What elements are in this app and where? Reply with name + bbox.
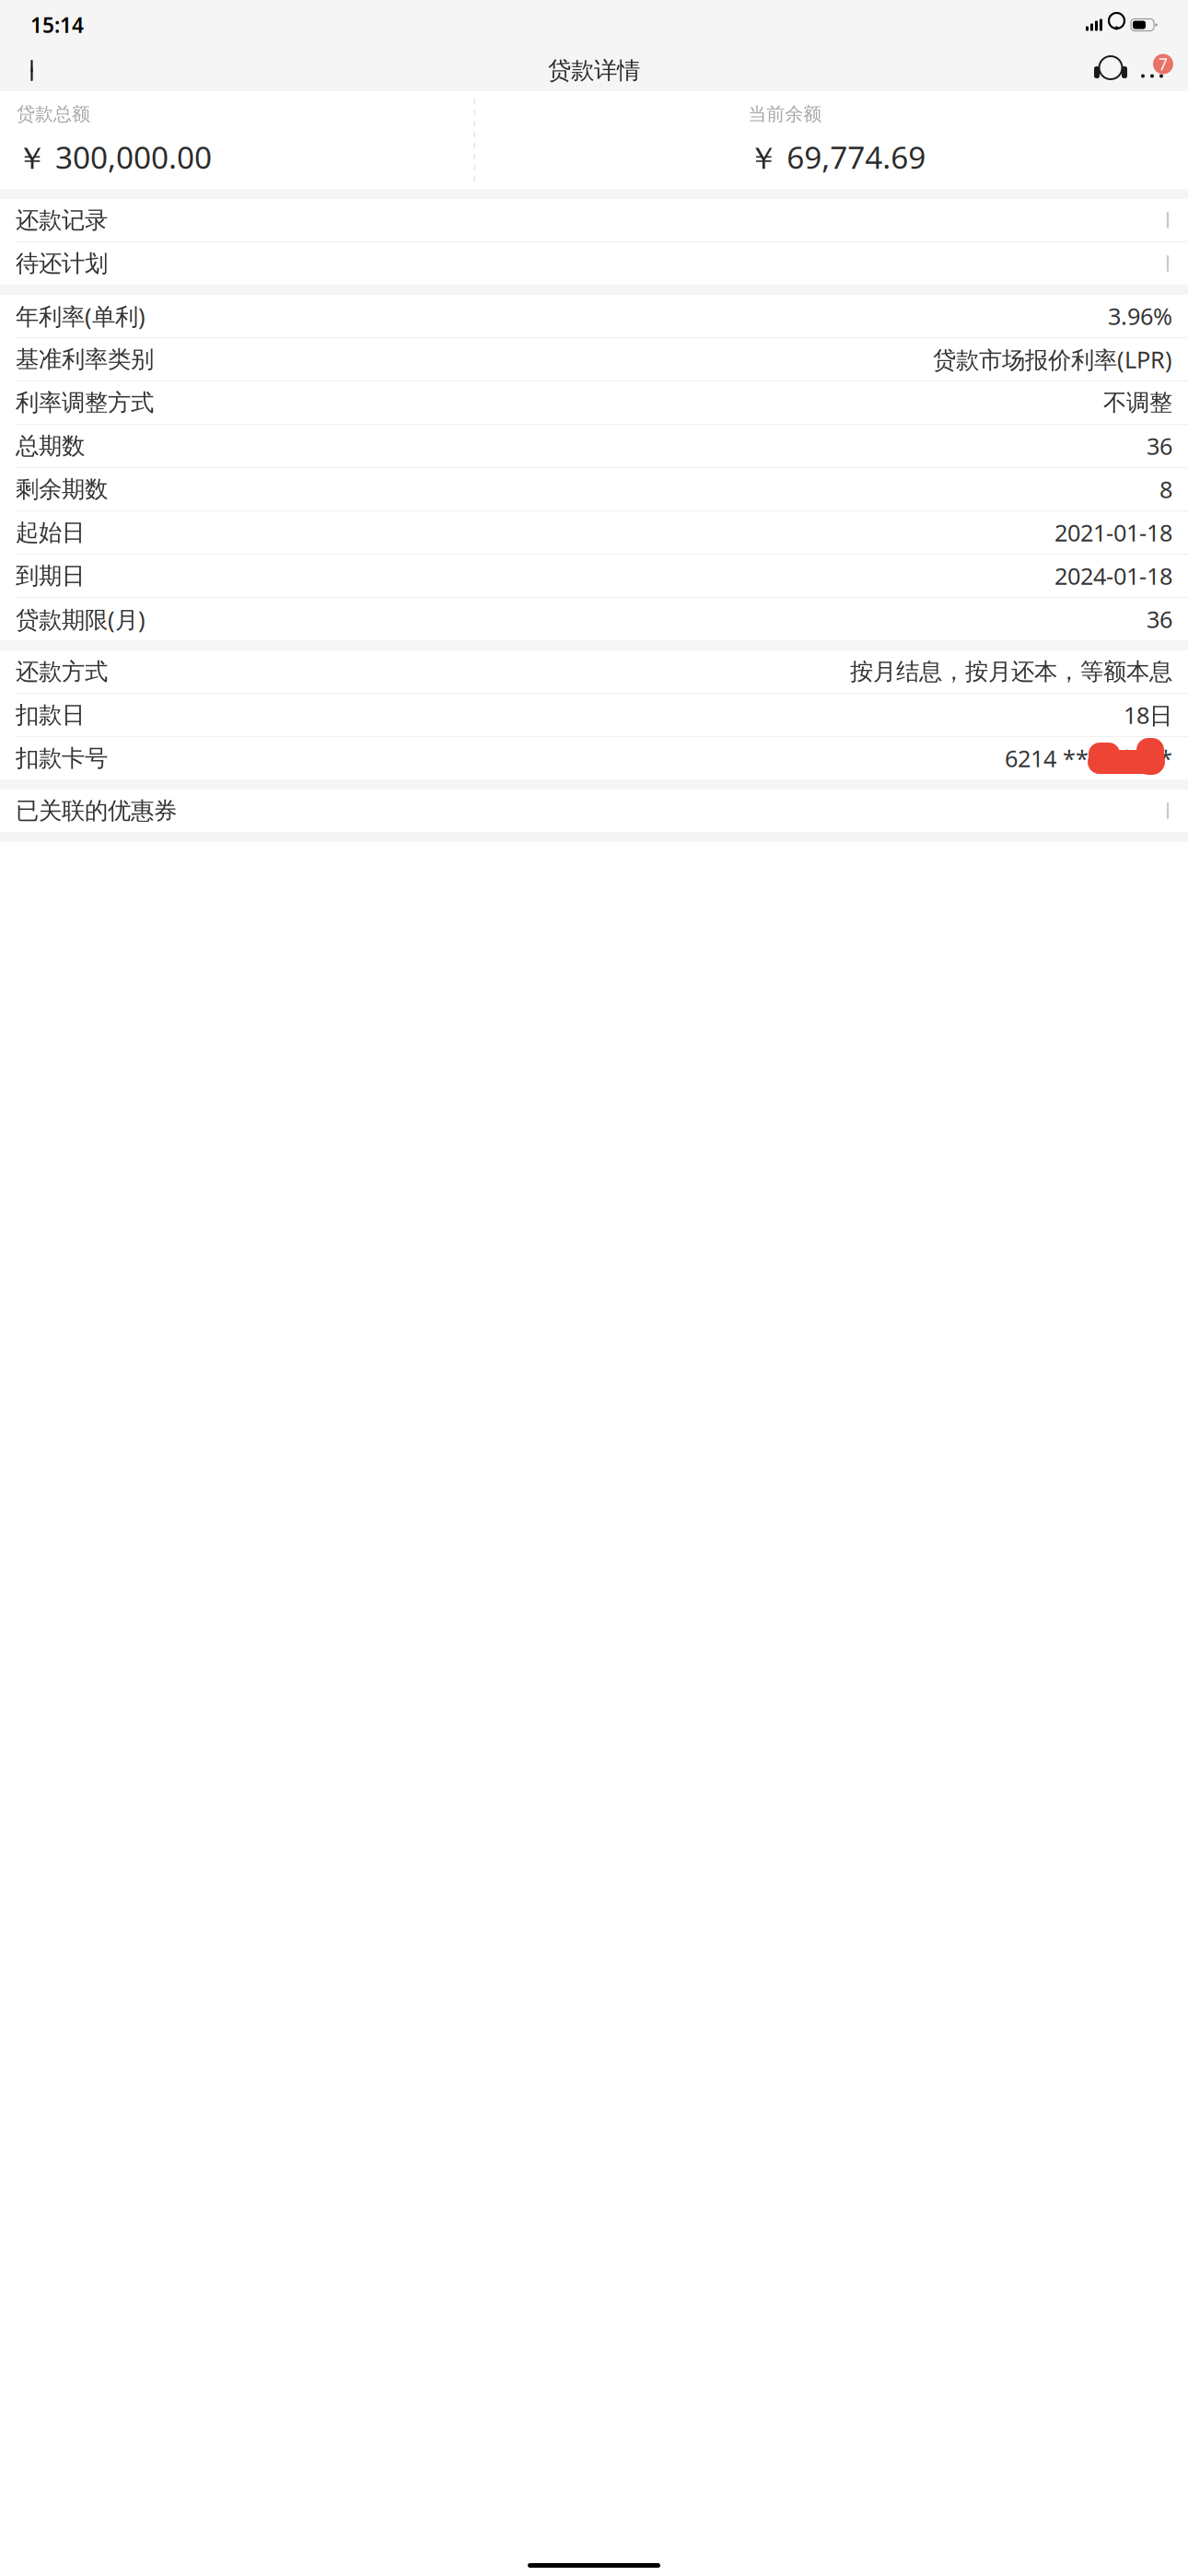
staticText: 还款方式 [16,657,108,686]
button[interactable]: More options [1129,50,1175,91]
staticText: ￥ 69,774.69 [748,136,926,177]
staticText: 贷款市场报价利率(LPR) [933,344,1172,375]
staticText: 7 [1159,53,1168,75]
staticText: 年利率(单利) [16,301,146,331]
staticText: 15:14 [30,11,84,39]
staticText: 36 [1147,430,1172,461]
staticText: 6214 **** **** [1005,743,1172,774]
staticText: 36 [1147,604,1172,635]
staticText: 起始日 [16,518,85,547]
staticText: 贷款总额 [17,103,90,125]
button[interactable]: Back [13,50,55,91]
staticText: 已关联的优惠券 [16,796,177,825]
button[interactable]: 还款记录 [0,199,1188,241]
staticText: 8 [1159,474,1172,505]
button[interactable]: 已关联的优惠券 [0,790,1188,832]
staticText: 贷款期限(月) [16,604,146,635]
staticText: 扣款日 [16,701,85,729]
button[interactable]: Customer service [1092,50,1129,91]
staticText: 到期日 [16,561,85,590]
staticText: 3.96% [1108,301,1172,331]
staticText: 剩余期数 [16,475,108,503]
staticText: 基准利率类别 [16,345,154,374]
staticText: 待还计划 [16,249,108,278]
staticText: 按月结息，按月还本，等额本息 [850,657,1172,686]
staticText: 当前余额 [748,103,822,125]
staticText: 18日 [1124,699,1172,730]
staticText: 利率调整方式 [16,388,154,417]
staticText: 贷款详情 [548,56,640,85]
staticText: 2021-01-18 [1054,517,1172,548]
staticText: 扣款卡号 [16,744,108,773]
staticText: ￥ 300,000.00 [17,136,212,177]
staticText: 不调整 [1103,388,1172,417]
staticText: 总期数 [16,432,85,460]
staticText: 还款记录 [16,206,108,234]
staticText: 2024-01-18 [1054,560,1172,591]
button[interactable]: 待还计划 [0,242,1188,285]
